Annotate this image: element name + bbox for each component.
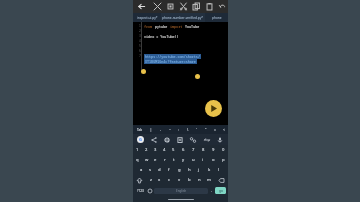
button[interactable]: v bbox=[174, 175, 184, 185]
button[interactable]: y bbox=[178, 155, 188, 165]
button[interactable]: Backspace bbox=[214, 175, 228, 185]
button[interactable]: Voice input bbox=[215, 135, 224, 144]
staticText: YouTube bbox=[185, 24, 200, 29]
button[interactable]: \ bbox=[183, 125, 192, 134]
staticText: u bbox=[192, 157, 195, 163]
button[interactable]: phone bbox=[205, 13, 228, 22]
button[interactable]: Select bbox=[164, 0, 177, 13]
staticText: \ bbox=[187, 127, 189, 132]
staticText: g bbox=[178, 167, 181, 173]
button[interactable]: b bbox=[184, 175, 194, 185]
staticText: phone-number-verified.py* bbox=[162, 16, 204, 20]
staticText: 1 bbox=[136, 147, 139, 153]
staticText: 5 bbox=[172, 147, 175, 153]
staticText: 5 bbox=[139, 44, 141, 49]
staticText: y bbox=[182, 157, 185, 163]
button[interactable]: m bbox=[204, 175, 214, 185]
button[interactable]: Undo bbox=[216, 0, 228, 13]
button[interactable]: j bbox=[194, 165, 204, 175]
button[interactable]: e bbox=[151, 155, 160, 165]
staticText: k bbox=[208, 167, 211, 173]
button[interactable]: 2 bbox=[142, 145, 151, 155]
button[interactable]: 6 bbox=[178, 145, 188, 155]
button[interactable]: phone-number-verified.py* bbox=[161, 13, 205, 22]
button[interactable]: t bbox=[169, 155, 178, 165]
staticText: d bbox=[158, 167, 161, 173]
staticText: o bbox=[212, 157, 215, 163]
button[interactable]: - bbox=[156, 125, 165, 134]
button[interactable]: d bbox=[155, 165, 164, 175]
button[interactable]: u bbox=[188, 155, 198, 165]
button[interactable]: r bbox=[160, 155, 169, 165]
button[interactable]: Run bbox=[205, 100, 222, 117]
button[interactable]: Space bbox=[154, 188, 208, 194]
button[interactable]: h bbox=[184, 165, 194, 175]
button[interactable]: 8 bbox=[198, 145, 208, 155]
button[interactable]: | bbox=[146, 125, 156, 134]
button[interactable]: a bbox=[137, 165, 146, 175]
button[interactable]: Copy bbox=[190, 0, 203, 13]
button[interactable]: ~ bbox=[165, 125, 174, 134]
staticText: G bbox=[139, 137, 142, 142]
button[interactable]: More bbox=[202, 135, 211, 144]
button[interactable]: x bbox=[155, 175, 164, 185]
button[interactable]: z bbox=[146, 175, 155, 185]
staticText: 9 bbox=[212, 147, 215, 153]
button[interactable]: inspect.ui.py* bbox=[133, 13, 161, 22]
button[interactable]: Selection start handle bbox=[141, 69, 146, 74]
button[interactable]: Share bbox=[149, 135, 158, 144]
button[interactable]: " bbox=[201, 125, 210, 134]
staticText: s bbox=[149, 167, 152, 173]
button[interactable]: q bbox=[133, 155, 142, 165]
button[interactable]: 3 bbox=[151, 145, 160, 155]
staticText: c bbox=[168, 177, 171, 183]
button[interactable]: Stickers bbox=[188, 135, 197, 144]
staticText: = bbox=[214, 127, 216, 132]
button[interactable]: = bbox=[210, 125, 219, 134]
button[interactable]: Shift bbox=[133, 175, 146, 185]
staticText: z bbox=[150, 177, 152, 183]
button[interactable]: ' bbox=[192, 125, 201, 134]
button[interactable]: p bbox=[218, 155, 228, 165]
button[interactable]: Back bbox=[135, 0, 148, 13]
button[interactable]: l bbox=[214, 165, 224, 175]
staticText: 2 bbox=[145, 147, 148, 153]
staticText: 6 bbox=[182, 147, 185, 153]
button[interactable]: Settings bbox=[162, 135, 171, 144]
button[interactable]: 9 bbox=[208, 145, 218, 155]
button[interactable]: Paste bbox=[203, 0, 216, 13]
button[interactable]: k bbox=[204, 165, 214, 175]
button[interactable]: Emoji bbox=[146, 185, 154, 196]
button[interactable]: o bbox=[208, 155, 218, 165]
staticText: v bbox=[178, 177, 181, 183]
staticText: j bbox=[198, 167, 200, 173]
button[interactable]: n bbox=[194, 175, 204, 185]
button[interactable]: 7 bbox=[188, 145, 198, 155]
button[interactable]: : bbox=[174, 125, 183, 134]
button[interactable]: Google bbox=[137, 136, 144, 143]
button[interactable]: Tab bbox=[133, 125, 146, 134]
button[interactable]: 0 bbox=[218, 145, 228, 155]
button[interactable]: s bbox=[146, 165, 155, 175]
button[interactable]: Enter bbox=[215, 187, 226, 194]
staticText: 8 bbox=[202, 147, 205, 153]
button[interactable]: 4 bbox=[160, 145, 169, 155]
staticText: import bbox=[170, 24, 185, 29]
button[interactable]: . bbox=[208, 185, 215, 196]
button[interactable]: Cut selection bbox=[151, 0, 164, 13]
staticText: 7 bbox=[192, 147, 195, 153]
button[interactable]: i bbox=[198, 155, 208, 165]
button[interactable]: ?123 bbox=[135, 185, 146, 196]
button[interactable]: c bbox=[164, 175, 174, 185]
button[interactable]: Selection end handle bbox=[195, 74, 200, 79]
staticText: w bbox=[145, 157, 149, 163]
button[interactable]: Cut bbox=[177, 0, 190, 13]
button[interactable]: w bbox=[142, 155, 151, 165]
staticText: b bbox=[188, 177, 191, 183]
button[interactable]: < bbox=[219, 125, 228, 134]
button[interactable]: f bbox=[164, 165, 174, 175]
button[interactable]: g bbox=[174, 165, 184, 175]
button[interactable]: Clipboard bbox=[175, 135, 184, 144]
button[interactable]: 1 bbox=[133, 145, 142, 155]
button[interactable]: 5 bbox=[169, 145, 178, 155]
